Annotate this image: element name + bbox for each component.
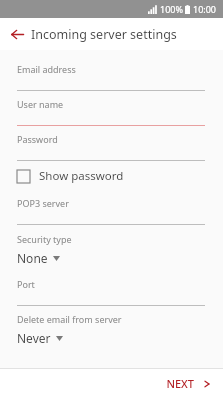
button[interactable]: Delete email from server xyxy=(0,309,223,346)
button[interactable]: User name xyxy=(0,94,223,129)
staticText: None xyxy=(17,250,48,266)
button[interactable]: Port xyxy=(0,274,223,309)
staticText: Port xyxy=(17,278,35,290)
button[interactable]: Show password xyxy=(0,164,223,188)
button[interactable]: Back xyxy=(8,25,26,43)
staticText: NEXT xyxy=(166,376,194,391)
button[interactable]: Email address xyxy=(0,59,223,94)
staticText: 10:00 xyxy=(193,3,217,15)
staticText: POP3 server xyxy=(17,197,69,209)
button[interactable]: NEXT xyxy=(154,371,223,396)
staticText: Incoming server settings xyxy=(31,26,177,43)
staticText: 100% xyxy=(160,3,183,15)
button[interactable]: Password xyxy=(0,129,223,164)
staticText: Delete email from server xyxy=(17,313,122,325)
staticText: Security type xyxy=(17,233,72,245)
staticText: Show password xyxy=(39,168,124,184)
staticText: Never xyxy=(17,330,51,346)
staticText: Email address xyxy=(17,63,76,75)
staticText: User name xyxy=(17,98,64,110)
button[interactable]: POP3 server xyxy=(0,193,223,228)
button[interactable]: Security type xyxy=(0,228,223,266)
staticText: Password xyxy=(17,133,58,145)
